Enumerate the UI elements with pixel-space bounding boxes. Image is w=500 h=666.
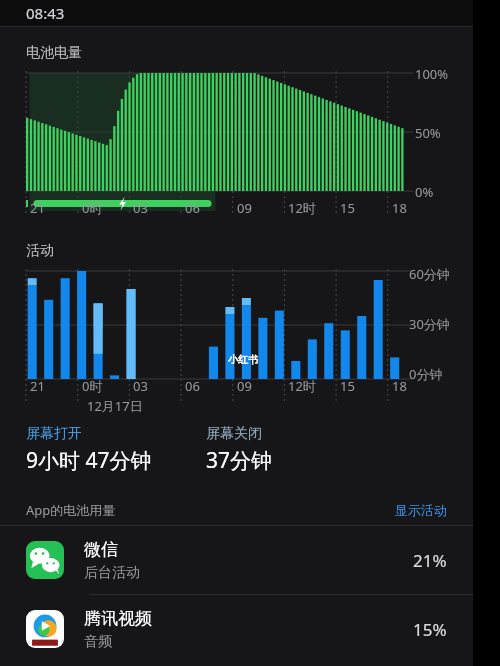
staticText: 屏幕关闭 [206,425,262,443]
staticText: 06 [185,377,200,395]
button[interactable]: 微信 [0,526,473,594]
staticText: 0分钟 [409,365,443,383]
staticText: 15% [413,618,447,641]
staticText: App的电池用量 [26,501,116,519]
staticText: 100% [415,65,449,83]
staticText: 12时 [288,199,316,217]
button[interactable]: 显示活动 [395,502,447,518]
staticText: 9小时 47分钟 [26,446,152,475]
staticText: 活动 [26,242,54,260]
staticText: 50% [415,124,441,142]
staticText: 30分钟 [409,315,450,333]
staticText: 电池电量 [26,44,82,62]
staticText: 03 [133,377,148,395]
staticText: 后台活动 [84,564,140,582]
staticText: 21 [30,199,45,217]
staticText: 18 [392,199,407,217]
staticText: 18 [392,377,407,395]
staticText: 21% [413,549,447,572]
staticText: 0时 [82,377,103,395]
staticText: 06 [185,199,200,217]
button[interactable]: 腾讯视频 [0,595,473,663]
staticText: 60分钟 [409,265,450,283]
staticText: 15 [340,377,355,395]
staticText: 小红书 [228,353,258,366]
staticText: 21 [30,377,45,395]
staticText: 屏幕打开 [26,425,82,443]
staticText: 音频 [84,633,112,651]
staticText: 09 [237,199,252,217]
staticText: 15 [340,199,355,217]
staticText: 腾讯视频 [84,608,152,629]
staticText: 显示活动 [395,502,447,518]
staticText: 12时 [288,377,316,395]
staticText: 09 [237,377,252,395]
staticText: 0时 [82,199,103,217]
staticText: 0% [415,183,434,201]
staticText: 微信 [84,539,118,560]
staticText: 37分钟 [206,446,273,475]
staticText: 03 [133,199,148,217]
staticText: 12月17日 [87,397,143,415]
staticText: 08:43 [26,3,65,23]
